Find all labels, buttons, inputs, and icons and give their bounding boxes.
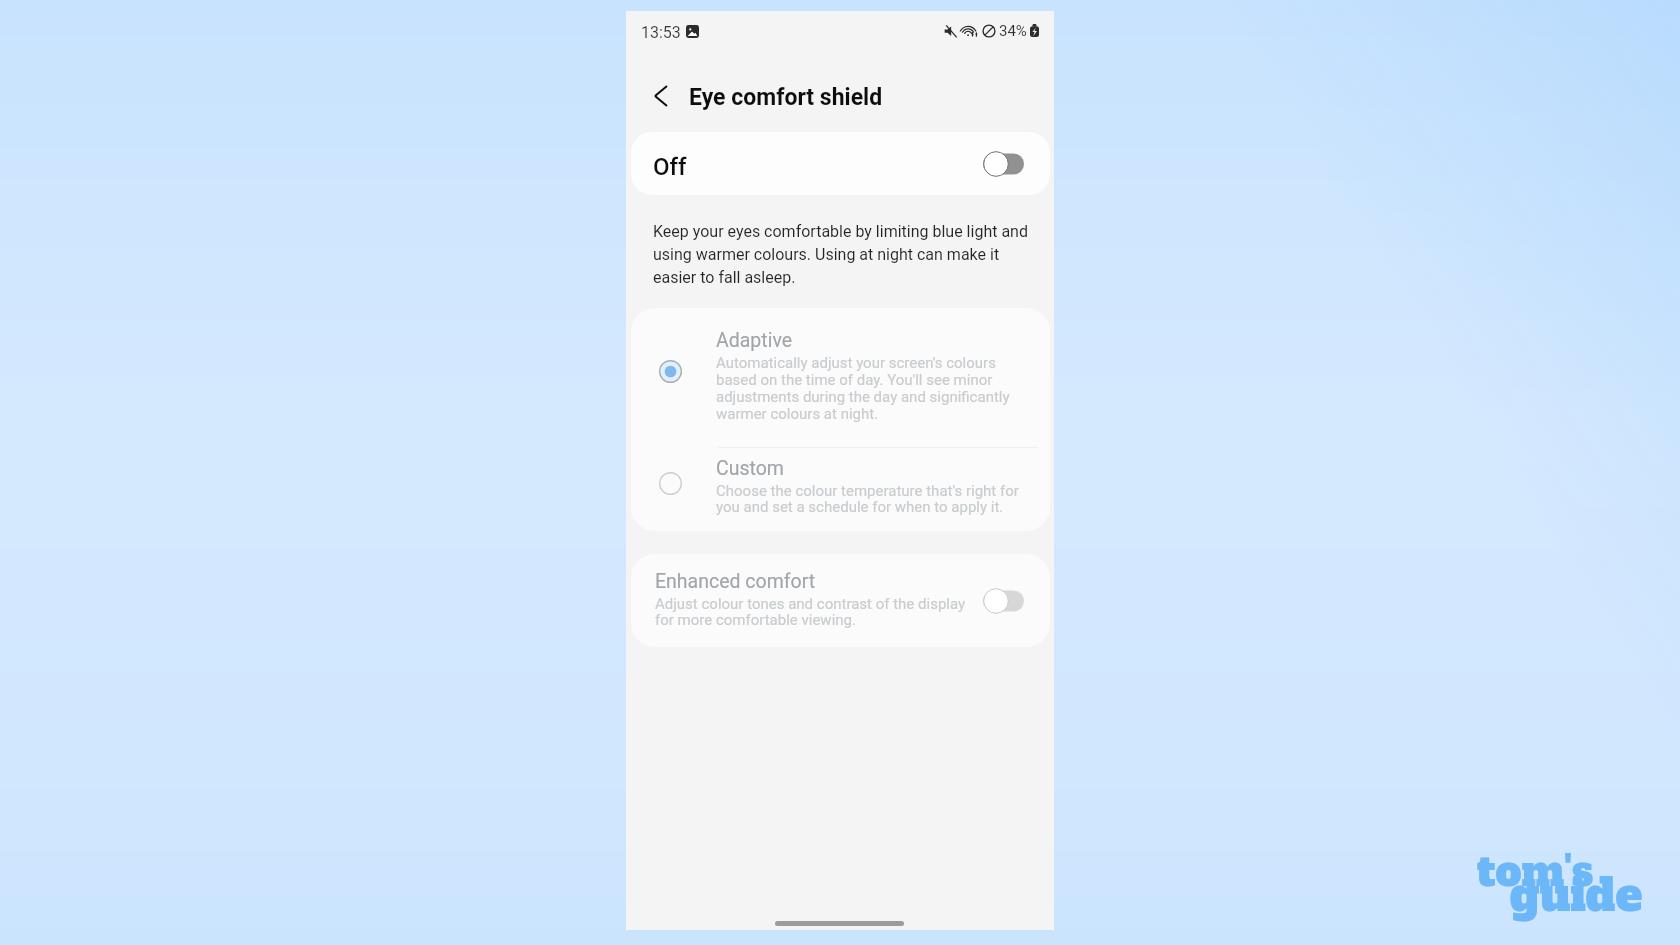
staticText: Keep your eyes comfortable by limiting b… bbox=[653, 219, 1031, 288]
staticText: Adjust colour tones and contrast of the … bbox=[655, 596, 980, 628]
staticText: Eye comfort shield bbox=[689, 84, 883, 111]
staticText: Custom bbox=[716, 457, 784, 480]
button[interactable]: Enhanced comfort bbox=[631, 554, 1050, 647]
button[interactable]: Off bbox=[631, 132, 1050, 195]
button[interactable]: Custom bbox=[631, 448, 1050, 531]
staticText: Automatically adjust your screen's colou… bbox=[716, 355, 1016, 423]
staticText: Off bbox=[653, 153, 687, 181]
staticText: 13:53 bbox=[641, 23, 681, 42]
staticText: guide bbox=[1510, 864, 1643, 926]
button[interactable]: Adaptive bbox=[631, 308, 1050, 447]
staticText: 34% bbox=[999, 22, 1027, 40]
button[interactable]: Back bbox=[634, 69, 688, 123]
staticText: Enhanced comfort bbox=[655, 570, 816, 593]
staticText: Choose the colour temperature that's rig… bbox=[716, 483, 1038, 515]
staticText: tom's bbox=[1477, 844, 1594, 900]
staticText: Adaptive bbox=[716, 329, 793, 352]
